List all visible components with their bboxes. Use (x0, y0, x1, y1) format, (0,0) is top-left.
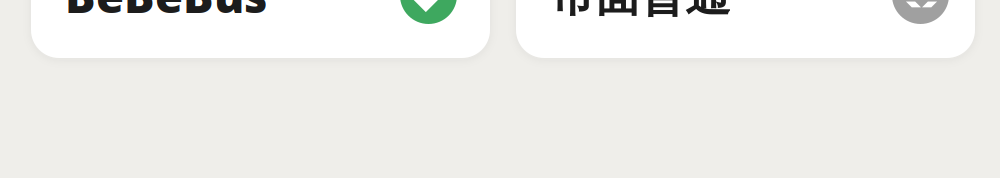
staticText: 市面普通 (550, 0, 730, 23)
button[interactable]: 市面普通 (516, 0, 975, 58)
button[interactable]: BeBeBus (31, 0, 490, 58)
staticText: BeBeBus (65, 0, 267, 26)
